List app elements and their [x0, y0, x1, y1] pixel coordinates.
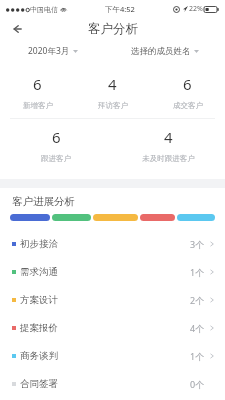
staticText: 合同签署	[20, 378, 58, 390]
staticText: 4	[164, 127, 173, 147]
button[interactable]: 商务谈判	[0, 342, 225, 370]
staticText: 方案设计	[20, 294, 58, 306]
button[interactable]: 初步接洽	[0, 230, 225, 258]
staticText: 4个	[190, 322, 205, 334]
staticText: 3个	[190, 238, 205, 250]
staticText: 22%	[189, 4, 203, 14]
staticText: 6	[52, 127, 61, 147]
button[interactable]: 4	[112, 119, 225, 171]
button[interactable]: 方案设计	[0, 286, 225, 314]
staticText: 商务谈判	[20, 350, 58, 362]
staticText: 0个	[190, 378, 205, 390]
button[interactable]: 4	[75, 66, 150, 118]
staticText: 客户进展分析	[12, 195, 75, 208]
button[interactable]: 6	[0, 119, 112, 171]
button[interactable]: 返回	[6, 18, 28, 40]
staticText: 1个	[190, 266, 205, 278]
staticText: 新增客户	[23, 101, 53, 110]
button[interactable]: 6	[0, 66, 75, 118]
staticText: 4	[108, 74, 117, 94]
staticText: 初步接洽	[20, 238, 58, 250]
button[interactable]: 提案报价	[0, 314, 225, 342]
button[interactable]: 选择的成员姓名	[105, 40, 225, 62]
button[interactable]: 2020年3月	[0, 40, 105, 62]
staticText: 跟进客户	[41, 154, 71, 163]
staticText: 未及时跟进客户	[142, 154, 195, 163]
button[interactable]: 6	[150, 66, 225, 118]
staticText: 下午4:52	[105, 4, 135, 14]
staticText: 需求沟通	[20, 266, 58, 278]
staticText: 2个	[190, 294, 205, 306]
staticText: 拜访客户	[98, 101, 128, 110]
button[interactable]: 需求沟通	[0, 258, 225, 286]
staticText: 6	[183, 74, 192, 94]
staticText: 1个	[190, 350, 205, 362]
staticText: 6	[33, 74, 42, 94]
button[interactable]: 合同签署	[0, 370, 225, 398]
staticText: 选择的成员姓名	[131, 46, 191, 57]
staticText: 中国电信	[30, 5, 58, 14]
staticText: 成交客户	[173, 101, 203, 110]
staticText: 客户分析	[88, 21, 138, 37]
staticText: 2020年3月	[28, 45, 70, 57]
staticText: 提案报价	[20, 322, 58, 334]
